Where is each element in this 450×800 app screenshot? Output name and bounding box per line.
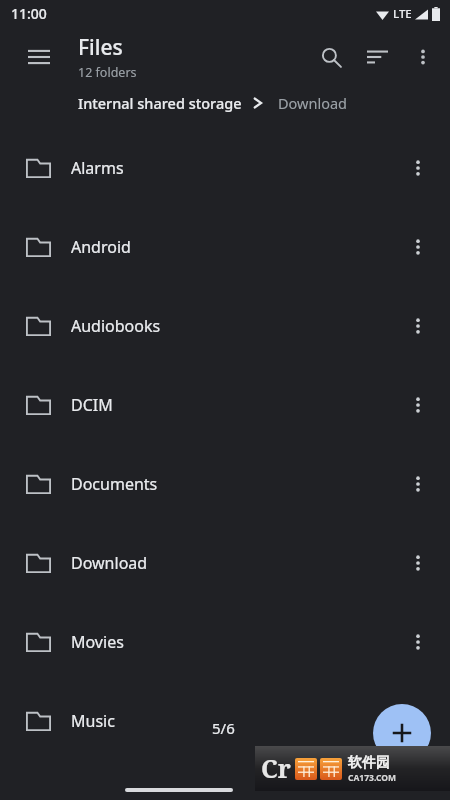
button[interactable]: More options for Android [395, 224, 441, 270]
button[interactable]: Open navigation drawer [15, 33, 63, 81]
button[interactable]: More options for Music [395, 698, 441, 744]
staticText: Alarms [71, 157, 124, 179]
button[interactable]: Movies [0, 602, 450, 681]
button[interactable]: Alarms [0, 128, 450, 207]
button[interactable]: Download [0, 523, 450, 602]
button[interactable]: More options [400, 34, 446, 80]
button[interactable]: Create new [373, 704, 431, 762]
staticText: CA173.COM [348, 772, 396, 784]
button[interactable]: More options for Audiobooks [395, 303, 441, 349]
staticText: Download [71, 552, 148, 574]
staticText: Movies [71, 631, 124, 653]
staticText: 12 folders [78, 64, 137, 81]
button[interactable]: DCIM [0, 365, 450, 444]
staticText: 11:00 [11, 4, 47, 23]
button[interactable]: More options for Movies [395, 619, 441, 665]
button[interactable]: Audiobooks [0, 286, 450, 365]
button[interactable]: More options for Documents [395, 461, 441, 507]
staticText: 5/6 [212, 718, 235, 738]
staticText: Android [71, 236, 131, 258]
button[interactable]: Download [278, 89, 347, 117]
staticText: Cr [261, 751, 291, 785]
staticText: Documents [71, 473, 158, 495]
button[interactable]: Music [0, 681, 450, 760]
button[interactable]: Internal shared storage [78, 89, 242, 117]
button[interactable]: More options for DCIM [395, 382, 441, 428]
staticText: DCIM [71, 394, 113, 416]
button[interactable]: More options for Download [395, 540, 441, 586]
staticText: 软件园 [348, 754, 390, 772]
staticText: Download [278, 93, 347, 113]
staticText: Audiobooks [71, 315, 161, 337]
staticText: Music [71, 710, 115, 732]
staticText: Files [78, 33, 123, 62]
staticText: Internal shared storage [78, 93, 242, 113]
button[interactable]: Sort [354, 34, 400, 80]
button[interactable]: More options for Alarms [395, 145, 441, 191]
button[interactable]: Search [308, 34, 354, 80]
button[interactable]: Documents [0, 444, 450, 523]
staticText: LTE [393, 6, 412, 22]
button[interactable]: Android [0, 207, 450, 286]
